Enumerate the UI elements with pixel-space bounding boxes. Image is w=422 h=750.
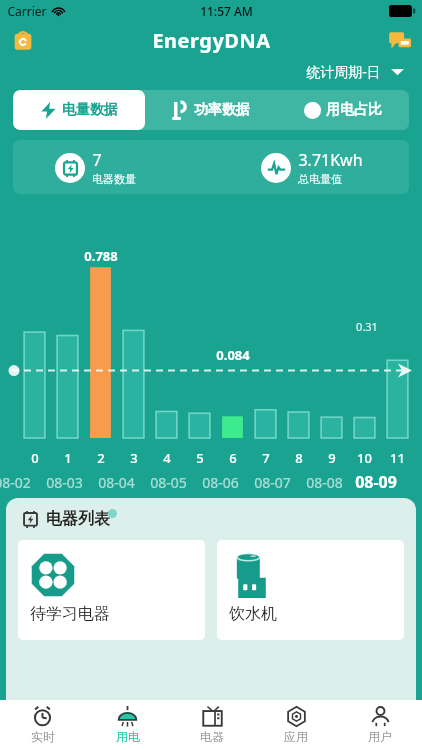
staticText: 统计周期-日 — [306, 62, 381, 81]
staticText: 用户 — [368, 729, 392, 744]
staticText: 电器数量 — [92, 172, 136, 186]
staticText: 11:57 AM — [200, 3, 253, 19]
button[interactable]: Lock — [12, 29, 34, 51]
staticText: 饮水机 — [229, 604, 277, 624]
staticText: 10 — [357, 449, 372, 467]
button[interactable]: 7 — [13, 140, 409, 194]
staticText: 0 — [31, 449, 39, 467]
staticText: 0.31 — [356, 319, 378, 334]
button[interactable]: 用电 — [85, 700, 170, 750]
staticText: 3 — [130, 449, 138, 467]
staticText: 08-03 — [46, 473, 83, 492]
button[interactable]: 实时 — [0, 700, 85, 750]
staticText: 实时 — [31, 729, 55, 744]
button[interactable]: 饮水机 — [217, 540, 404, 640]
button[interactable]: 电量数据 — [13, 90, 145, 130]
staticText: 待学习电器 — [30, 604, 110, 624]
staticText: 4 — [163, 449, 171, 467]
button[interactable]: 用户 — [338, 700, 422, 750]
staticText: 5 — [196, 449, 204, 467]
button[interactable]: 电器 — [170, 700, 254, 750]
staticText: 2 — [97, 449, 105, 467]
staticText: 7 — [262, 449, 270, 467]
staticText: Carrier — [7, 3, 47, 19]
button[interactable]: Messages — [388, 28, 412, 52]
button[interactable]: 应用 — [254, 700, 338, 750]
button[interactable]: 统计周期-日 — [302, 60, 408, 83]
staticText: 08-05 — [150, 473, 187, 492]
staticText: 9 — [328, 449, 336, 467]
staticText: 3.71Kwh — [298, 149, 363, 171]
staticText: 电器 — [200, 729, 224, 744]
staticText: 功率数据 — [194, 101, 250, 119]
staticText: 应用 — [284, 729, 308, 744]
staticText: 电器列表 — [46, 509, 110, 529]
staticText: 0.084 — [216, 346, 250, 364]
staticText: 08-04 — [98, 473, 135, 492]
staticText: 08-02 — [0, 473, 31, 492]
staticText: 11 — [390, 449, 405, 467]
staticText: 6 — [229, 449, 237, 467]
staticText: 08-08 — [306, 473, 343, 492]
staticText: 用电占比 — [326, 101, 382, 119]
staticText: 用电 — [116, 729, 140, 744]
staticText: 总电量值 — [298, 172, 342, 186]
staticText: 08-07 — [254, 473, 291, 492]
staticText: EnergyDNA — [152, 27, 271, 54]
staticText: 08-09 — [355, 471, 397, 493]
staticText: 7 — [92, 149, 102, 171]
staticText: 8 — [295, 449, 303, 467]
button[interactable]: 待学习电器 — [18, 540, 205, 640]
staticText: 08-06 — [202, 473, 239, 492]
staticText: 0.788 — [84, 247, 118, 265]
button[interactable]: 用电占比 — [277, 90, 409, 130]
staticText: 电量数据 — [62, 101, 118, 119]
button[interactable]: 功率数据 — [145, 90, 277, 130]
staticText: 1 — [64, 449, 72, 467]
